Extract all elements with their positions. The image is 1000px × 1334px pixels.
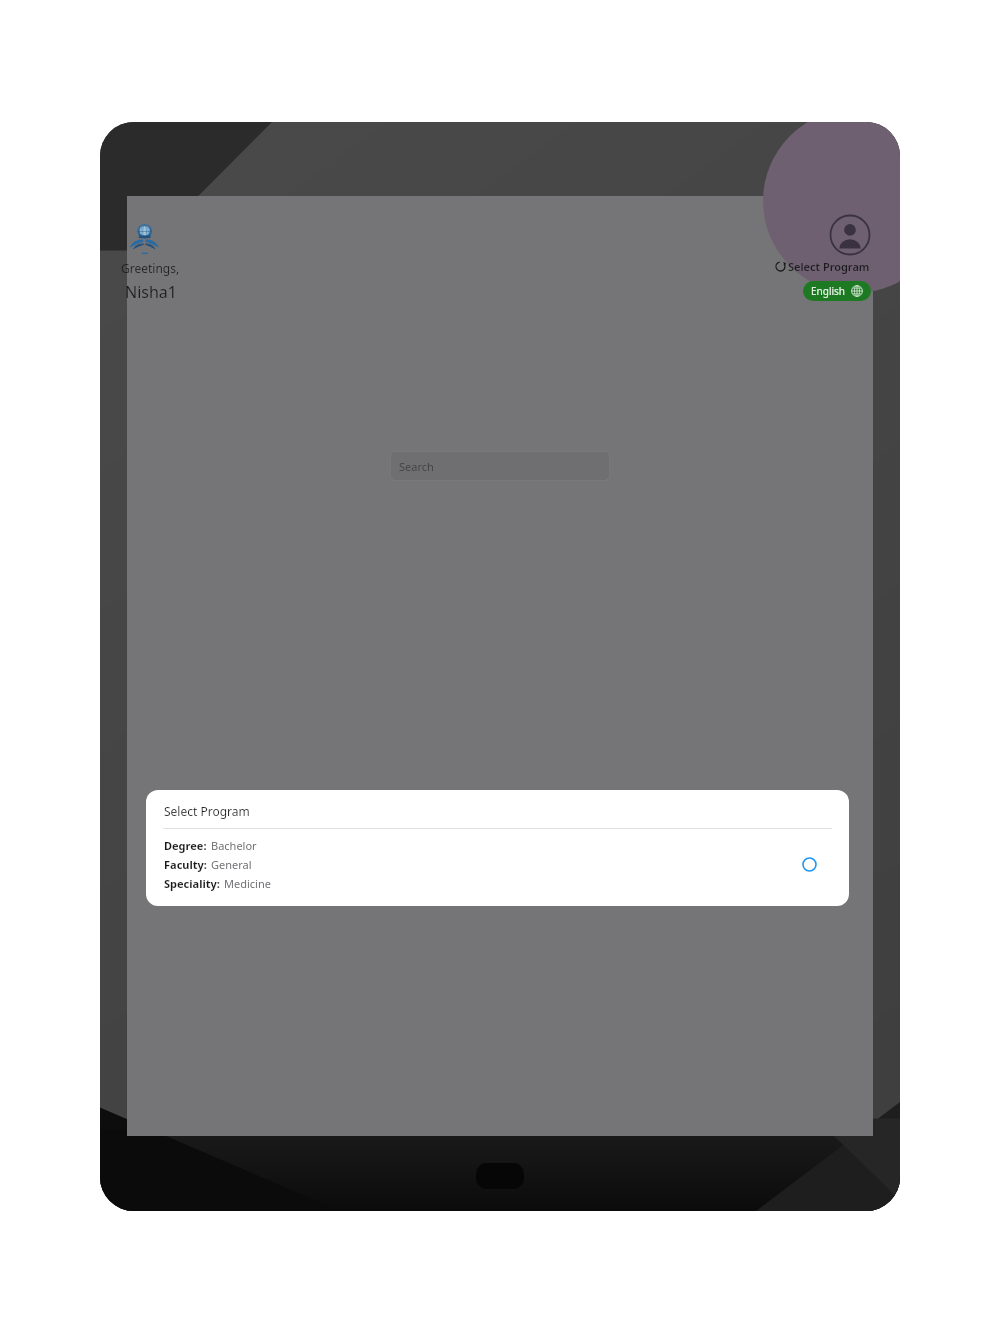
staticText: Select Program xyxy=(164,803,250,819)
button[interactable]: Degree: xyxy=(146,829,849,899)
staticText: General xyxy=(211,857,252,872)
staticText: Speciality: xyxy=(164,876,220,891)
staticText: Degree: xyxy=(164,838,207,853)
staticText: Bachelor xyxy=(211,838,257,853)
button[interactable]: Profile xyxy=(829,214,871,256)
button[interactable]: Home xyxy=(476,1163,524,1189)
staticText: Search xyxy=(399,459,434,474)
button[interactable]: Search xyxy=(390,451,610,481)
staticText: Nisha1 xyxy=(125,281,177,303)
staticText: English xyxy=(811,284,846,298)
button[interactable]: English xyxy=(803,281,871,301)
button[interactable]: Select Program xyxy=(775,259,870,274)
staticText: Select Program xyxy=(788,259,870,274)
staticText: Faculty: xyxy=(164,857,207,872)
button[interactable]: Select this program xyxy=(798,853,820,875)
staticText: Greetings, xyxy=(121,260,180,276)
staticText: Medicine xyxy=(224,876,271,891)
